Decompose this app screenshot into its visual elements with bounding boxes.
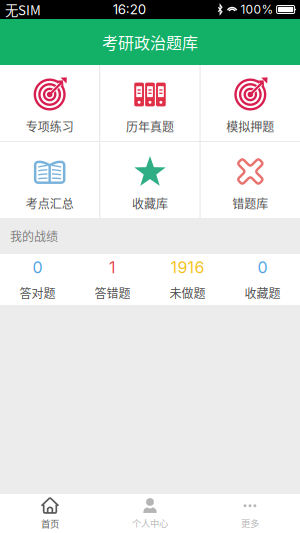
staticText: 答错题 bbox=[94, 284, 130, 301]
button[interactable]: 考点汇总 bbox=[0, 142, 99, 218]
staticText: 考点汇总 bbox=[26, 195, 74, 212]
staticText: 1 bbox=[109, 258, 116, 277]
staticText: 考研政治题库 bbox=[102, 30, 198, 54]
staticText: 错题库 bbox=[232, 195, 268, 212]
button[interactable]: 更多 bbox=[200, 494, 300, 533]
staticText: 0 bbox=[257, 258, 267, 277]
staticText: 模拟押题 bbox=[226, 118, 274, 135]
staticText: 答对题 bbox=[19, 284, 55, 301]
staticText: 16:20 bbox=[113, 1, 146, 17]
staticText: 收藏题 bbox=[244, 284, 280, 301]
button[interactable]: 首页 bbox=[0, 494, 100, 533]
button[interactable]: 历年真题 bbox=[100, 65, 200, 141]
staticText: 无SIM bbox=[5, 0, 41, 19]
button[interactable]: 收藏库 bbox=[100, 142, 200, 218]
staticText: 100% bbox=[241, 2, 274, 17]
staticText: 未做题 bbox=[169, 284, 205, 301]
staticText: 收藏库 bbox=[132, 195, 168, 212]
staticText: 历年真题 bbox=[126, 118, 174, 135]
staticText: 首页 bbox=[41, 517, 59, 530]
staticText: 1916 bbox=[170, 258, 204, 277]
staticText: 专项练习 bbox=[26, 118, 74, 135]
button[interactable]: 个人中心 bbox=[100, 494, 200, 533]
staticText: 0 bbox=[32, 258, 42, 277]
button[interactable]: 专项练习 bbox=[0, 65, 99, 141]
staticText: 我的战绩 bbox=[10, 227, 58, 245]
button[interactable]: 错题库 bbox=[201, 142, 300, 218]
staticText: 个人中心 bbox=[132, 516, 168, 530]
button[interactable]: 模拟押题 bbox=[201, 65, 300, 141]
staticText: 更多 bbox=[241, 516, 259, 530]
